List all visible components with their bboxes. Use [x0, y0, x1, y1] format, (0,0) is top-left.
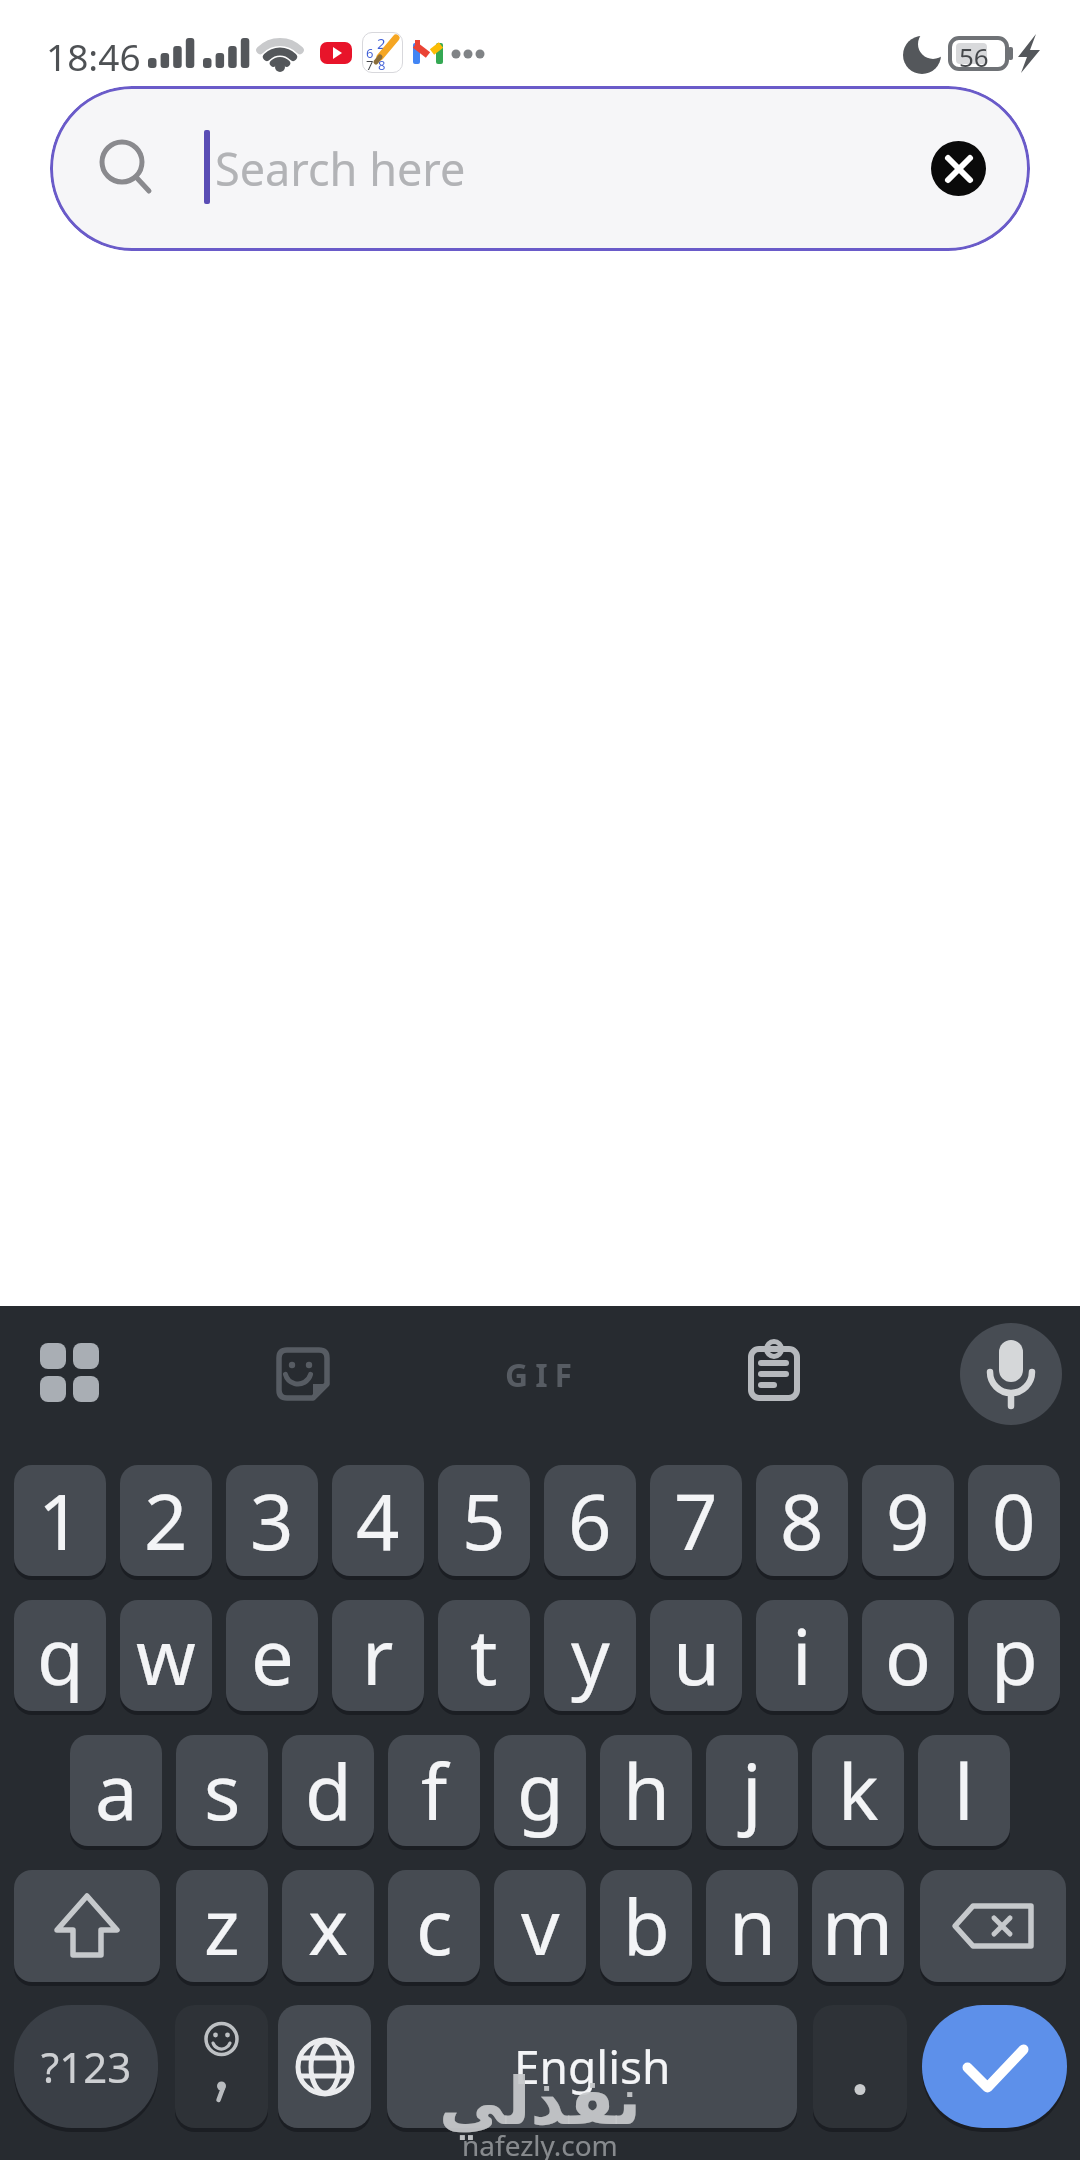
staticText: u	[673, 1604, 720, 1708]
button[interactable]: o	[862, 1600, 954, 1711]
staticText: 9	[886, 1469, 930, 1573]
staticText: GIF	[505, 1353, 580, 1397]
button[interactable]: t	[438, 1600, 530, 1711]
staticText: nafezly.com	[462, 2126, 618, 2160]
button[interactable]: x	[282, 1870, 374, 1982]
staticText: f	[421, 1739, 448, 1843]
staticText: m	[822, 1874, 894, 1978]
staticText: 7	[674, 1469, 718, 1573]
button[interactable]: g	[494, 1735, 586, 1846]
staticText: 2	[144, 1469, 188, 1573]
staticText: 56	[959, 39, 989, 74]
button[interactable]: b	[600, 1870, 692, 1982]
staticText: c	[416, 1874, 453, 1978]
staticText: g	[517, 1739, 564, 1843]
button[interactable]: l	[918, 1735, 1010, 1846]
button[interactable]: 3	[226, 1465, 318, 1576]
button[interactable]: y	[544, 1600, 636, 1711]
button[interactable]: c	[388, 1870, 480, 1982]
staticText: ?123	[41, 2038, 132, 2095]
button[interactable]: q	[14, 1600, 106, 1711]
button[interactable]	[277, 1348, 330, 1401]
button[interactable]: Search here	[50, 86, 1030, 251]
button[interactable]	[40, 1343, 100, 1403]
button[interactable]	[175, 2005, 268, 2128]
staticText: 18:46	[46, 31, 141, 81]
staticText: 8	[378, 56, 386, 74]
staticText: r	[362, 1604, 394, 1708]
staticText: 8	[780, 1469, 824, 1573]
button[interactable]: 7	[650, 1465, 742, 1576]
staticText: 6	[366, 44, 374, 62]
button[interactable]: m	[812, 1870, 904, 1982]
staticText: 3	[250, 1469, 294, 1573]
button[interactable]: s	[176, 1735, 268, 1846]
button[interactable]: e	[226, 1600, 318, 1711]
staticText: v	[521, 1874, 560, 1978]
button[interactable]: p	[968, 1600, 1060, 1711]
staticText: z	[204, 1874, 240, 1978]
button[interactable]: 5	[438, 1465, 530, 1576]
staticText: d	[305, 1739, 352, 1843]
staticText: q	[37, 1604, 84, 1708]
staticText: English	[514, 2035, 671, 2098]
button[interactable]: j	[706, 1735, 798, 1846]
staticText: k	[838, 1739, 879, 1843]
button[interactable]	[960, 1323, 1062, 1425]
staticText: نفذلي	[439, 2063, 641, 2140]
button[interactable]	[748, 1339, 801, 1401]
staticText: s	[204, 1739, 241, 1843]
button[interactable]: d	[282, 1735, 374, 1846]
staticText: t	[470, 1604, 498, 1708]
button[interactable]: 4	[332, 1465, 424, 1576]
button[interactable]	[922, 2005, 1067, 2128]
staticText: 2	[377, 33, 386, 53]
staticText: a	[95, 1739, 138, 1843]
button[interactable]: f	[388, 1735, 480, 1846]
button[interactable]: 0	[968, 1465, 1060, 1576]
button[interactable]: English	[387, 2005, 797, 2128]
button[interactable]	[813, 2005, 907, 2128]
button[interactable]: h	[600, 1735, 692, 1846]
button[interactable]	[920, 1870, 1066, 1982]
staticText: 6	[568, 1469, 612, 1573]
button[interactable]: r	[332, 1600, 424, 1711]
button[interactable]	[278, 2005, 371, 2128]
staticText: e	[251, 1604, 294, 1708]
staticText: i	[792, 1604, 812, 1708]
staticText: 1	[38, 1469, 82, 1573]
button[interactable]: 1	[14, 1465, 106, 1576]
staticText: l	[954, 1739, 974, 1843]
button[interactable]: u	[650, 1600, 742, 1711]
staticText: 4	[356, 1469, 400, 1573]
button[interactable]: z	[176, 1870, 268, 1982]
staticText: n	[729, 1874, 776, 1978]
button[interactable]: ?123	[14, 2005, 158, 2128]
staticText: 0	[992, 1469, 1036, 1573]
button[interactable]	[14, 1870, 160, 1982]
button[interactable]	[931, 141, 986, 196]
staticText: y	[571, 1604, 610, 1708]
button[interactable]: 2	[120, 1465, 212, 1576]
button[interactable]: v	[494, 1870, 586, 1982]
staticText: 5	[462, 1469, 506, 1573]
button[interactable]: k	[812, 1735, 904, 1846]
button[interactable]: n	[706, 1870, 798, 1982]
button[interactable]: a	[70, 1735, 162, 1846]
staticText: 7	[366, 56, 374, 74]
staticText: Search here	[215, 138, 466, 199]
staticText: b	[623, 1874, 670, 1978]
staticText: p	[991, 1604, 1038, 1708]
button[interactable]: 9	[862, 1465, 954, 1576]
button[interactable]: w	[120, 1600, 212, 1711]
staticText: x	[308, 1874, 349, 1978]
button[interactable]: i	[756, 1600, 848, 1711]
staticText: j	[742, 1739, 762, 1843]
staticText: w	[136, 1604, 196, 1708]
button[interactable]: 6	[544, 1465, 636, 1576]
staticText: h	[623, 1739, 670, 1843]
staticText: o	[885, 1604, 931, 1708]
button[interactable]: 8	[756, 1465, 848, 1576]
